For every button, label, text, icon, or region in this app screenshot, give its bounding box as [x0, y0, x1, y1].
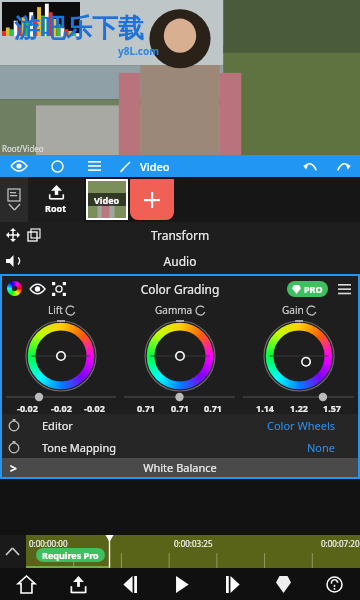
button[interactable]: >: [2, 458, 358, 477]
button[interactable]: 0.71: [120, 318, 239, 414]
staticText: 0.71: [137, 402, 155, 414]
button[interactable]: Requires Pro: [42, 549, 99, 561]
staticText: Audio: [0, 253, 360, 269]
button[interactable]: Collapse layers: [0, 177, 28, 222]
button[interactable]: 1.14: [239, 318, 358, 414]
staticText: Tone Mapping: [42, 440, 116, 455]
button[interactable]: Previous frame: [104, 568, 156, 600]
staticText: 1.22: [290, 402, 308, 414]
staticText: Gain: [282, 303, 304, 317]
staticText: 0:00:03:25: [174, 538, 213, 549]
button[interactable]: Collapse timeline: [0, 535, 24, 568]
button[interactable]: Preview visibility: [0, 155, 38, 177]
staticText: Color Grading: [2, 281, 358, 297]
staticText: -0.02: [17, 402, 38, 414]
button[interactable]: 0:00:00:00: [26, 535, 360, 568]
button[interactable]: Transform: [0, 222, 360, 248]
staticText: Gamma: [155, 303, 193, 317]
button[interactable]: Options: [336, 281, 352, 297]
staticText: Root: [45, 202, 67, 214]
staticText: Requires Pro: [42, 549, 99, 561]
button[interactable]: Undo: [292, 155, 328, 177]
button[interactable]: Pro features: [258, 568, 309, 600]
button[interactable]: Next frame: [207, 568, 258, 600]
button[interactable]: Help: [309, 568, 360, 600]
button[interactable]: Home: [0, 568, 52, 600]
button[interactable]: Editor: [2, 414, 358, 436]
staticText: 1.57: [323, 402, 341, 414]
button[interactable]: Video: [88, 181, 126, 218]
button[interactable]: Audio: [0, 248, 360, 274]
staticText: 0.71: [204, 402, 222, 414]
staticText: >: [10, 460, 17, 476]
staticText: Root/Video: [2, 143, 44, 154]
staticText: Transform: [0, 227, 360, 243]
button[interactable]: Redo: [328, 155, 360, 177]
button[interactable]: Add layer: [130, 179, 174, 220]
staticText: y8L.com: [118, 44, 159, 58]
staticText: Lift: [48, 303, 63, 317]
button[interactable]: Root: [28, 177, 84, 222]
staticText: White Balance: [2, 460, 358, 475]
staticText: Video: [140, 159, 170, 174]
button[interactable]: Menu: [76, 155, 112, 177]
button[interactable]: Edit name: [112, 155, 138, 177]
staticText: 0:00:07:20: [321, 538, 360, 549]
button[interactable]: Mask: [38, 155, 76, 177]
button[interactable]: PRO: [292, 283, 323, 295]
staticText: Video: [94, 194, 120, 206]
button[interactable]: -0.02: [2, 318, 120, 414]
button[interactable]: Tone Mapping: [2, 436, 358, 458]
staticText: 1.14: [256, 402, 274, 414]
staticText: 0.71: [171, 402, 189, 414]
button[interactable]: Export: [52, 568, 104, 600]
staticText: -0.02: [84, 402, 105, 414]
staticText: Editor: [42, 418, 73, 433]
staticText: -0.02: [51, 402, 72, 414]
button[interactable]: Color Grading: [2, 276, 358, 301]
staticText: PRO: [304, 283, 323, 295]
staticText: 游吧乐下载: [14, 12, 144, 45]
staticText: None: [307, 440, 336, 455]
button[interactable]: Play: [156, 568, 207, 600]
staticText: Color Wheels: [267, 418, 336, 433]
staticText: 0:00:00:00: [29, 538, 68, 549]
